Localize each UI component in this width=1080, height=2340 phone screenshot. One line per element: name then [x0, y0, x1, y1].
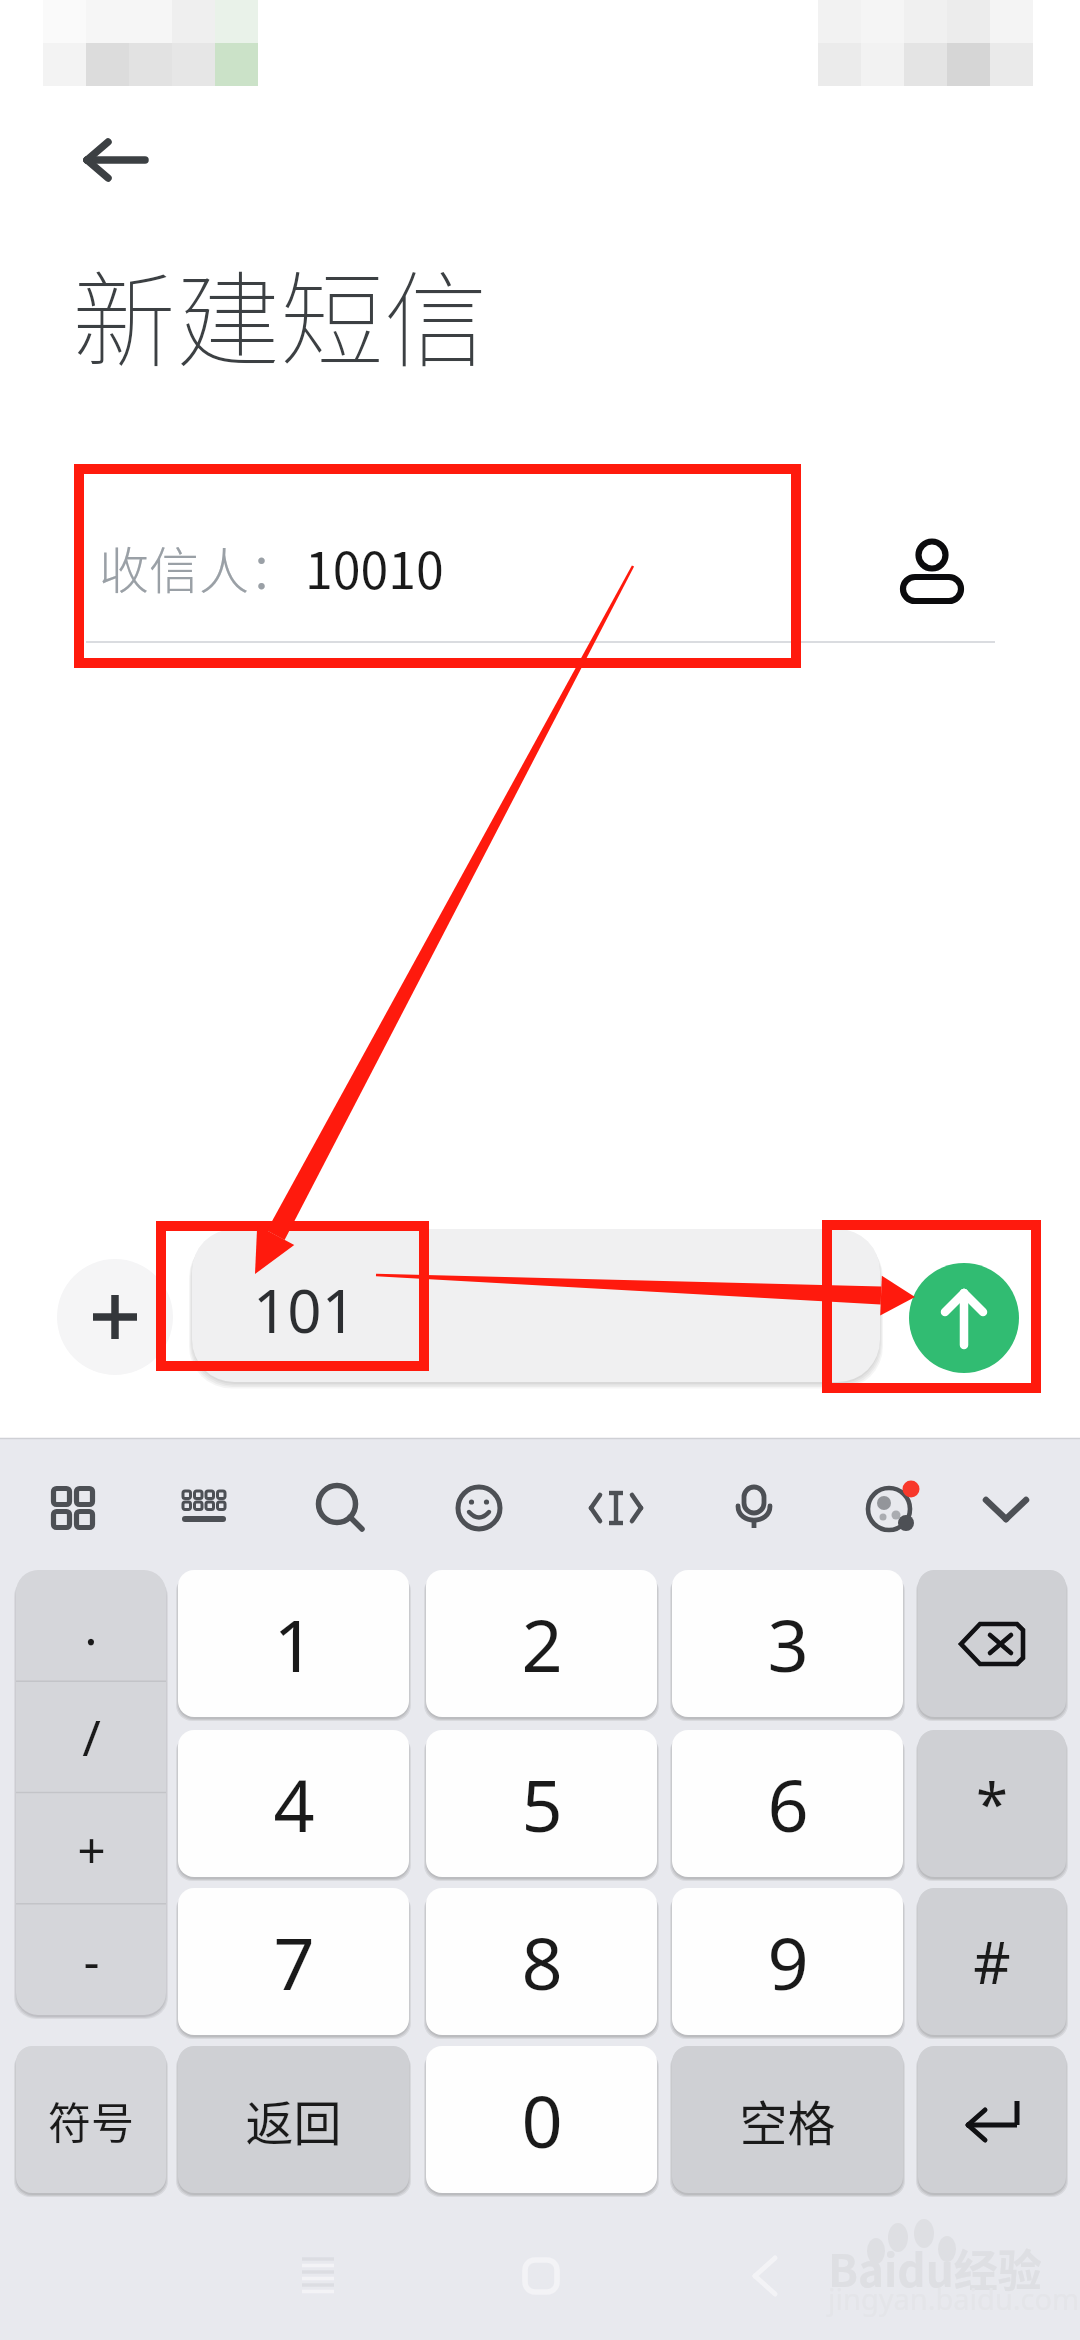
- staticText: 空格: [739, 2085, 836, 2155]
- button[interactable]: .: [16, 1570, 166, 1681]
- button[interactable]: 符号: [16, 2046, 166, 2193]
- button[interactable]: Account: [834, 1450, 950, 1566]
- staticText: 101: [253, 1269, 356, 1351]
- button[interactable]: Back: [50, 112, 180, 208]
- button[interactable]: -: [16, 1904, 166, 2015]
- button[interactable]: +: [16, 1793, 166, 1904]
- staticText: 2: [521, 1595, 563, 1693]
- staticText: /: [82, 1703, 101, 1771]
- button[interactable]: Emoji: [421, 1450, 537, 1566]
- staticText: 10010: [305, 531, 444, 603]
- button[interactable]: Keyboard layouts: [15, 1450, 131, 1566]
- button[interactable]: 7: [178, 1888, 409, 2035]
- staticText: +: [77, 1815, 106, 1883]
- button[interactable]: 5: [426, 1730, 657, 1877]
- staticText: Baidu经验: [828, 2236, 1042, 2300]
- staticText: 0: [521, 2071, 563, 2169]
- staticText: jingyan.baidu.com: [828, 2279, 1080, 2318]
- staticText: 9: [767, 1913, 809, 2011]
- button[interactable]: #: [918, 1888, 1066, 2035]
- button[interactable]: Choose contact: [874, 513, 990, 629]
- button[interactable]: 8: [426, 1888, 657, 2035]
- staticText: 5: [521, 1755, 563, 1853]
- staticText: *: [976, 1764, 1008, 1843]
- button[interactable]: 4: [178, 1730, 409, 1877]
- staticText: 返回: [245, 2085, 342, 2155]
- button[interactable]: [918, 1570, 1066, 1717]
- button[interactable]: Switch keyboard: [146, 1450, 262, 1566]
- button[interactable]: Text cursor: [558, 1450, 674, 1566]
- button[interactable]: [918, 2046, 1066, 2193]
- staticText: .: [84, 1592, 98, 1660]
- staticText: -: [83, 1926, 100, 1994]
- button[interactable]: Voice input: [696, 1450, 812, 1566]
- staticText: 8: [521, 1913, 563, 2011]
- button[interactable]: 返回: [178, 2046, 409, 2193]
- staticText: #: [973, 1922, 1011, 2001]
- button[interactable]: 空格: [672, 2046, 903, 2193]
- staticText: 4: [273, 1755, 315, 1853]
- staticText: 1: [273, 1595, 315, 1693]
- button[interactable]: 9: [672, 1888, 903, 2035]
- button[interactable]: Send: [909, 1263, 1019, 1373]
- button[interactable]: Add attachment: [57, 1259, 173, 1375]
- button[interactable]: 3: [672, 1570, 903, 1717]
- button[interactable]: 0: [426, 2046, 657, 2193]
- button[interactable]: 101: [192, 1229, 880, 1382]
- button[interactable]: 6: [672, 1730, 903, 1877]
- staticText: 收信人：: [99, 531, 299, 603]
- button[interactable]: /: [16, 1681, 166, 1792]
- button[interactable]: 1: [178, 1570, 409, 1717]
- button[interactable]: Search: [283, 1450, 399, 1566]
- button[interactable]: 收信人：: [0, 470, 1080, 670]
- button[interactable]: *: [918, 1730, 1066, 1877]
- staticText: 7: [273, 1913, 315, 2011]
- button[interactable]: Hide keyboard: [948, 1450, 1064, 1566]
- staticText: 符号: [48, 2089, 134, 2151]
- staticText: 3: [767, 1595, 809, 1693]
- button[interactable]: 2: [426, 1570, 657, 1717]
- staticText: 新建短信: [72, 238, 489, 389]
- staticText: 6: [767, 1755, 809, 1853]
